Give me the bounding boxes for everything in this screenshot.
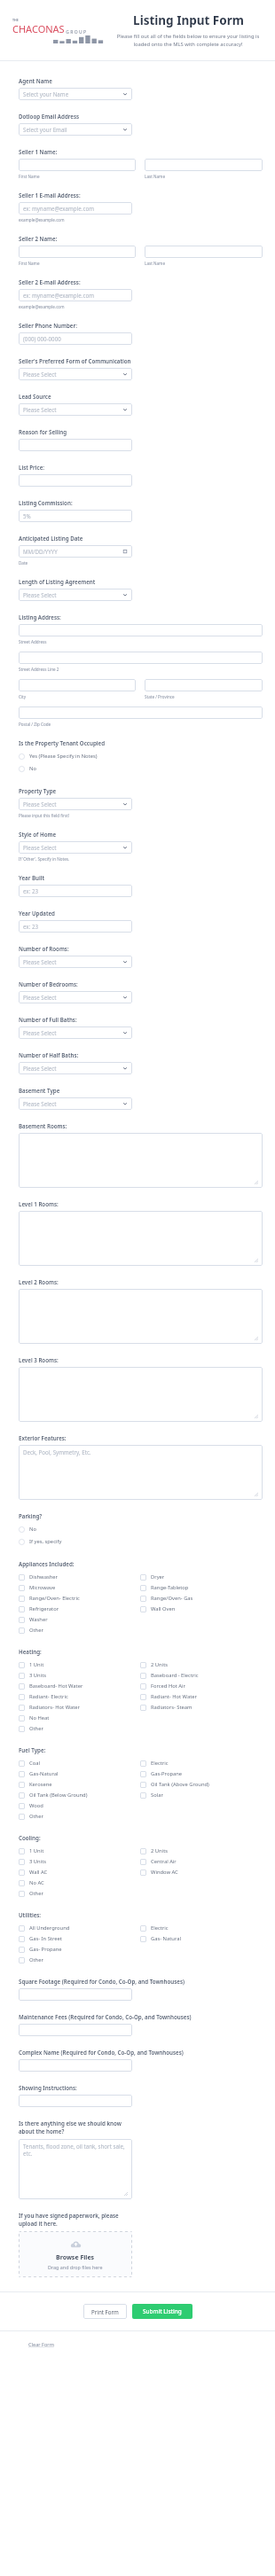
button[interactable]: ex: myname@example.com — [19, 202, 132, 215]
button[interactable]: Range-Tabletop — [140, 1582, 263, 1593]
button[interactable] — [19, 706, 263, 719]
button[interactable]: Dishwasher — [19, 1572, 140, 1582]
button[interactable]: ex: 23 — [19, 885, 132, 897]
button[interactable]: (000) 000-0000 — [19, 332, 132, 345]
button[interactable]: ex: myname@example.com — [19, 289, 132, 301]
button[interactable]: Forced Hot Air — [140, 1681, 263, 1691]
button[interactable]: Radiators- Hot Water — [19, 1702, 140, 1713]
button[interactable]: Central Air — [140, 1856, 263, 1867]
button[interactable]: If yes, specify — [19, 1535, 263, 1548]
button[interactable]: Other — [19, 1955, 140, 1965]
button[interactable]: 2 Units — [140, 1659, 263, 1670]
button[interactable] — [19, 2024, 132, 2036]
button[interactable]: Wall AC — [19, 1867, 140, 1877]
button[interactable]: Radiant- Electric — [19, 1691, 140, 1702]
button[interactable]: Oil Tank (Below Ground) — [19, 1790, 140, 1800]
button[interactable] — [19, 1133, 263, 1188]
button[interactable]: Electric — [140, 1923, 263, 1933]
button[interactable] — [19, 1988, 132, 2001]
button[interactable] — [19, 159, 136, 171]
button[interactable]: Gas- Natural — [140, 1933, 263, 1944]
button[interactable]: Tenants, flood zone, oil tank, short sal… — [19, 2139, 132, 2199]
button[interactable] — [145, 246, 263, 258]
button[interactable]: Clear Form — [28, 2341, 54, 2348]
button[interactable]: Please Select — [19, 368, 132, 380]
button[interactable]: Washer — [19, 1614, 140, 1625]
button[interactable]: Please Select — [19, 1062, 132, 1074]
button[interactable]: Baseboard - Electric — [140, 1670, 263, 1681]
button[interactable]: Wood — [19, 1800, 140, 1811]
button[interactable]: Please Select — [19, 589, 132, 601]
button[interactable]: No — [19, 1523, 263, 1535]
button[interactable]: Other — [19, 1625, 140, 1635]
button[interactable] — [19, 1289, 263, 1344]
button[interactable]: Gas-Propane — [140, 1768, 263, 1779]
staticText: Gas-Propane — [151, 1770, 183, 1777]
button[interactable]: Radiators- Steam — [140, 1702, 263, 1713]
button[interactable]: Please Select — [19, 1026, 132, 1039]
button[interactable]: Oil Tank (Above Ground) — [140, 1779, 263, 1790]
button[interactable]: No AC — [19, 1877, 140, 1888]
staticText: 2 Units — [151, 1661, 169, 1668]
button[interactable]: All Underground — [19, 1923, 140, 1933]
button[interactable] — [19, 2095, 132, 2107]
button[interactable]: Please Select — [19, 956, 132, 968]
button[interactable]: Deck, Pool, Symmetry, Etc. — [19, 1445, 263, 1500]
button[interactable] — [145, 159, 263, 171]
button[interactable]: 1 Unit — [19, 1659, 140, 1670]
button[interactable]: Radiant- Hot Water — [140, 1691, 263, 1702]
staticText: CHACONAS — [12, 22, 65, 35]
button[interactable]: 1 Unit — [19, 1846, 140, 1856]
button[interactable]: Select your Email — [19, 123, 132, 136]
button[interactable] — [19, 1367, 263, 1422]
button[interactable]: Gas- In Street — [19, 1933, 140, 1944]
button[interactable]: Electric — [140, 1758, 263, 1768]
staticText: Seller 1 E-mail Address: — [19, 191, 81, 199]
button[interactable]: Baseboard- Hot Water — [19, 1681, 140, 1691]
button[interactable]: Coal — [19, 1758, 140, 1768]
button[interactable]: MM/DD/YYYY — [19, 545, 132, 558]
button[interactable] — [19, 624, 263, 636]
button[interactable]: Range/Oven- Gas — [140, 1593, 263, 1604]
button[interactable]: Other — [19, 1888, 140, 1899]
button[interactable]: Please Select — [19, 798, 132, 810]
button[interactable]: Solar — [140, 1790, 263, 1800]
button[interactable]: Print Form — [83, 2304, 127, 2319]
button[interactable]: Microwave — [19, 1582, 140, 1593]
button[interactable] — [145, 679, 263, 691]
button[interactable]: Please Select — [19, 991, 132, 1003]
button[interactable]: No Heat — [19, 1713, 140, 1723]
button[interactable]: Gas-Natural — [19, 1768, 140, 1779]
button[interactable]: Dryer — [140, 1572, 263, 1582]
button[interactable] — [19, 474, 132, 487]
button[interactable]: Range/Oven- Electric — [19, 1593, 140, 1604]
button[interactable] — [19, 1211, 263, 1266]
button[interactable]: Yes (Please Specify in Notes) — [19, 750, 263, 762]
button[interactable] — [19, 439, 132, 451]
button[interactable] — [19, 652, 263, 664]
button[interactable]: Window AC — [140, 1867, 263, 1877]
button[interactable]: Browse Files — [19, 2231, 132, 2277]
button[interactable]: Other — [19, 1811, 140, 1822]
staticText: Other — [29, 1956, 43, 1963]
button[interactable]: Kerosene — [19, 1779, 140, 1790]
staticText: Level 3 Rooms: — [19, 1356, 59, 1363]
button[interactable]: ex: 23 — [19, 920, 132, 933]
button[interactable]: Please Select — [19, 403, 132, 416]
button[interactable]: Other — [19, 1723, 140, 1734]
button[interactable]: Select your Name — [19, 88, 132, 100]
button[interactable]: Please Select — [19, 841, 132, 854]
button[interactable]: Please Select — [19, 1097, 132, 1110]
button[interactable]: 5% — [19, 510, 132, 522]
button[interactable]: 2 Units — [140, 1846, 263, 1856]
button[interactable]: Wall Oven — [140, 1604, 263, 1614]
button[interactable]: Refrigerator — [19, 1604, 140, 1614]
button[interactable]: No — [19, 762, 263, 775]
button[interactable] — [19, 2059, 132, 2072]
button[interactable]: Submit Listing — [132, 2304, 192, 2319]
button[interactable] — [19, 679, 136, 691]
button[interactable]: 3 Units — [19, 1670, 140, 1681]
button[interactable]: 3 Units — [19, 1856, 140, 1867]
button[interactable] — [19, 246, 136, 258]
button[interactable]: Gas- Propane — [19, 1944, 140, 1955]
